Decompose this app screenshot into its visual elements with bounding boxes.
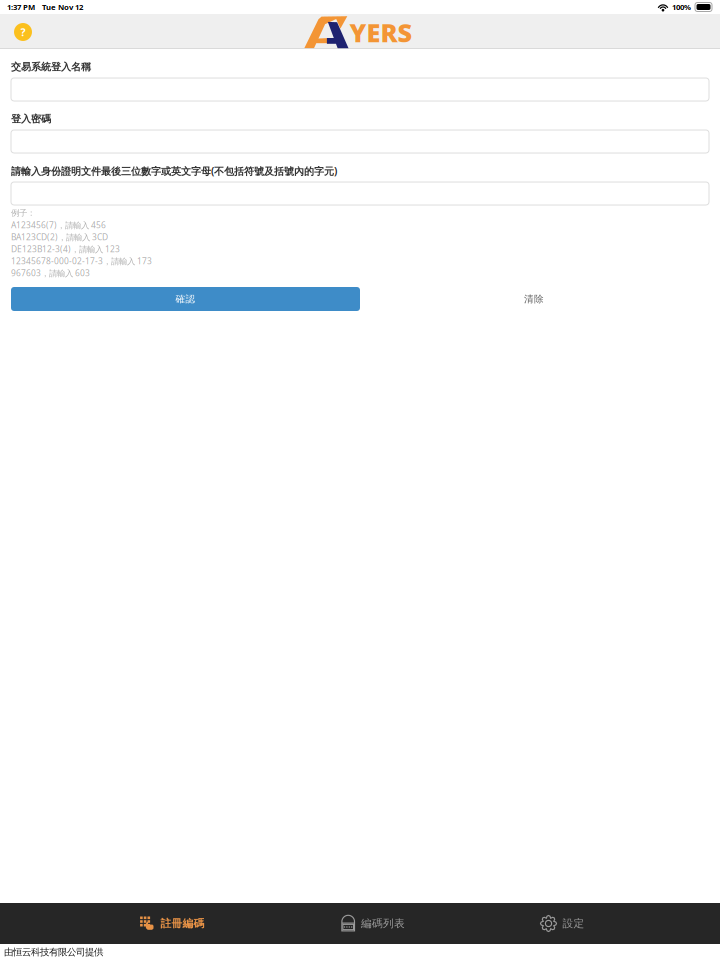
button[interactable]: 確認 bbox=[11, 287, 360, 311]
staticText: 註冊編碼 bbox=[160, 917, 204, 930]
staticText: 請輸入身份證明文件最後三位數字或英文字母(不包括符號及括號內的字元) bbox=[11, 164, 337, 178]
staticText: 1:37 PM bbox=[7, 2, 35, 12]
button[interactable]: 編碼列表 bbox=[341, 903, 405, 944]
button[interactable]: 清除 bbox=[474, 287, 594, 311]
staticText: 由恒云科技有限公司提供 bbox=[4, 946, 103, 958]
staticText: 編碼列表 bbox=[361, 917, 405, 930]
staticText: A123456(7)，請輸入 456 bbox=[11, 219, 106, 231]
staticText: 交易系統登入名稱 bbox=[11, 61, 91, 73]
button[interactable]: Help bbox=[8, 17, 38, 47]
staticText: DE123B12-3(4)，請輸入 123 bbox=[11, 243, 120, 255]
button[interactable]: 註冊編碼 bbox=[139, 903, 204, 944]
staticText: 967603，請輸入 603 bbox=[11, 267, 90, 279]
staticText: BA123CD(2)，請輸入 3CD bbox=[11, 231, 108, 243]
button[interactable]: 設定 bbox=[539, 903, 584, 944]
staticText: 設定 bbox=[562, 917, 584, 930]
staticText: 100% bbox=[672, 2, 691, 12]
staticText: 清除 bbox=[524, 293, 544, 305]
staticText: YERS bbox=[349, 16, 412, 49]
staticText: 12345678-000-02-17-3，請輸入 173 bbox=[11, 255, 152, 267]
staticText: 登入密碼 bbox=[11, 113, 51, 125]
staticText: 確認 bbox=[175, 293, 195, 305]
staticText: 例子： bbox=[11, 208, 35, 218]
staticText: ? bbox=[20, 25, 25, 39]
staticText: Tue Nov 12 bbox=[42, 2, 83, 12]
